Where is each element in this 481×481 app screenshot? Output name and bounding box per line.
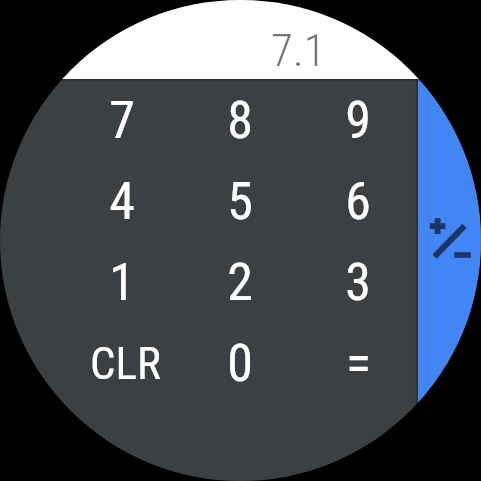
- staticText: 5: [227, 171, 253, 232]
- staticText: 3: [345, 252, 371, 313]
- staticText: 9: [345, 90, 371, 151]
- staticText: 2: [227, 252, 253, 313]
- button[interactable]: CLR: [63, 322, 181, 403]
- staticText: =: [346, 333, 371, 394]
- button[interactable]: =: [299, 322, 417, 403]
- button[interactable]: 5: [181, 160, 299, 241]
- button[interactable]: 0: [181, 322, 299, 403]
- button[interactable]: 8: [181, 79, 299, 160]
- button[interactable]: 7.1: [0, 0, 481, 79]
- button[interactable]: 3: [299, 241, 417, 322]
- button[interactable]: 1: [63, 241, 181, 322]
- staticText: 6: [345, 171, 371, 232]
- staticText: 7.1: [271, 24, 326, 77]
- staticText: 7: [109, 90, 135, 151]
- staticText: 0: [227, 333, 253, 394]
- button[interactable]: 6: [299, 160, 417, 241]
- staticText: 1: [109, 252, 135, 313]
- staticText: CLR: [90, 337, 161, 390]
- button[interactable]: Toggle sign plus minus: [418, 79, 481, 481]
- button[interactable]: 2: [181, 241, 299, 322]
- button[interactable]: 7: [63, 79, 181, 160]
- staticText: 8: [227, 90, 253, 151]
- button[interactable]: 4: [63, 160, 181, 241]
- button[interactable]: 9: [299, 79, 417, 160]
- staticText: 4: [109, 171, 135, 232]
